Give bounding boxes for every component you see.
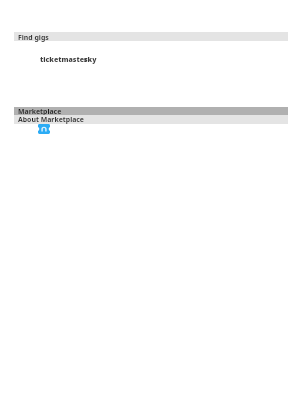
button[interactable] <box>14 115 288 124</box>
staticText: Marketplace <box>18 107 62 116</box>
staticText: sky <box>84 55 97 65</box>
staticText: Find gigs <box>18 33 49 42</box>
staticText: About Marketplace <box>18 115 84 124</box>
button[interactable] <box>14 107 288 115</box>
button[interactable]: Tickets <box>38 124 50 134</box>
staticText: ticketmaster <box>40 55 88 65</box>
button[interactable] <box>14 32 288 41</box>
